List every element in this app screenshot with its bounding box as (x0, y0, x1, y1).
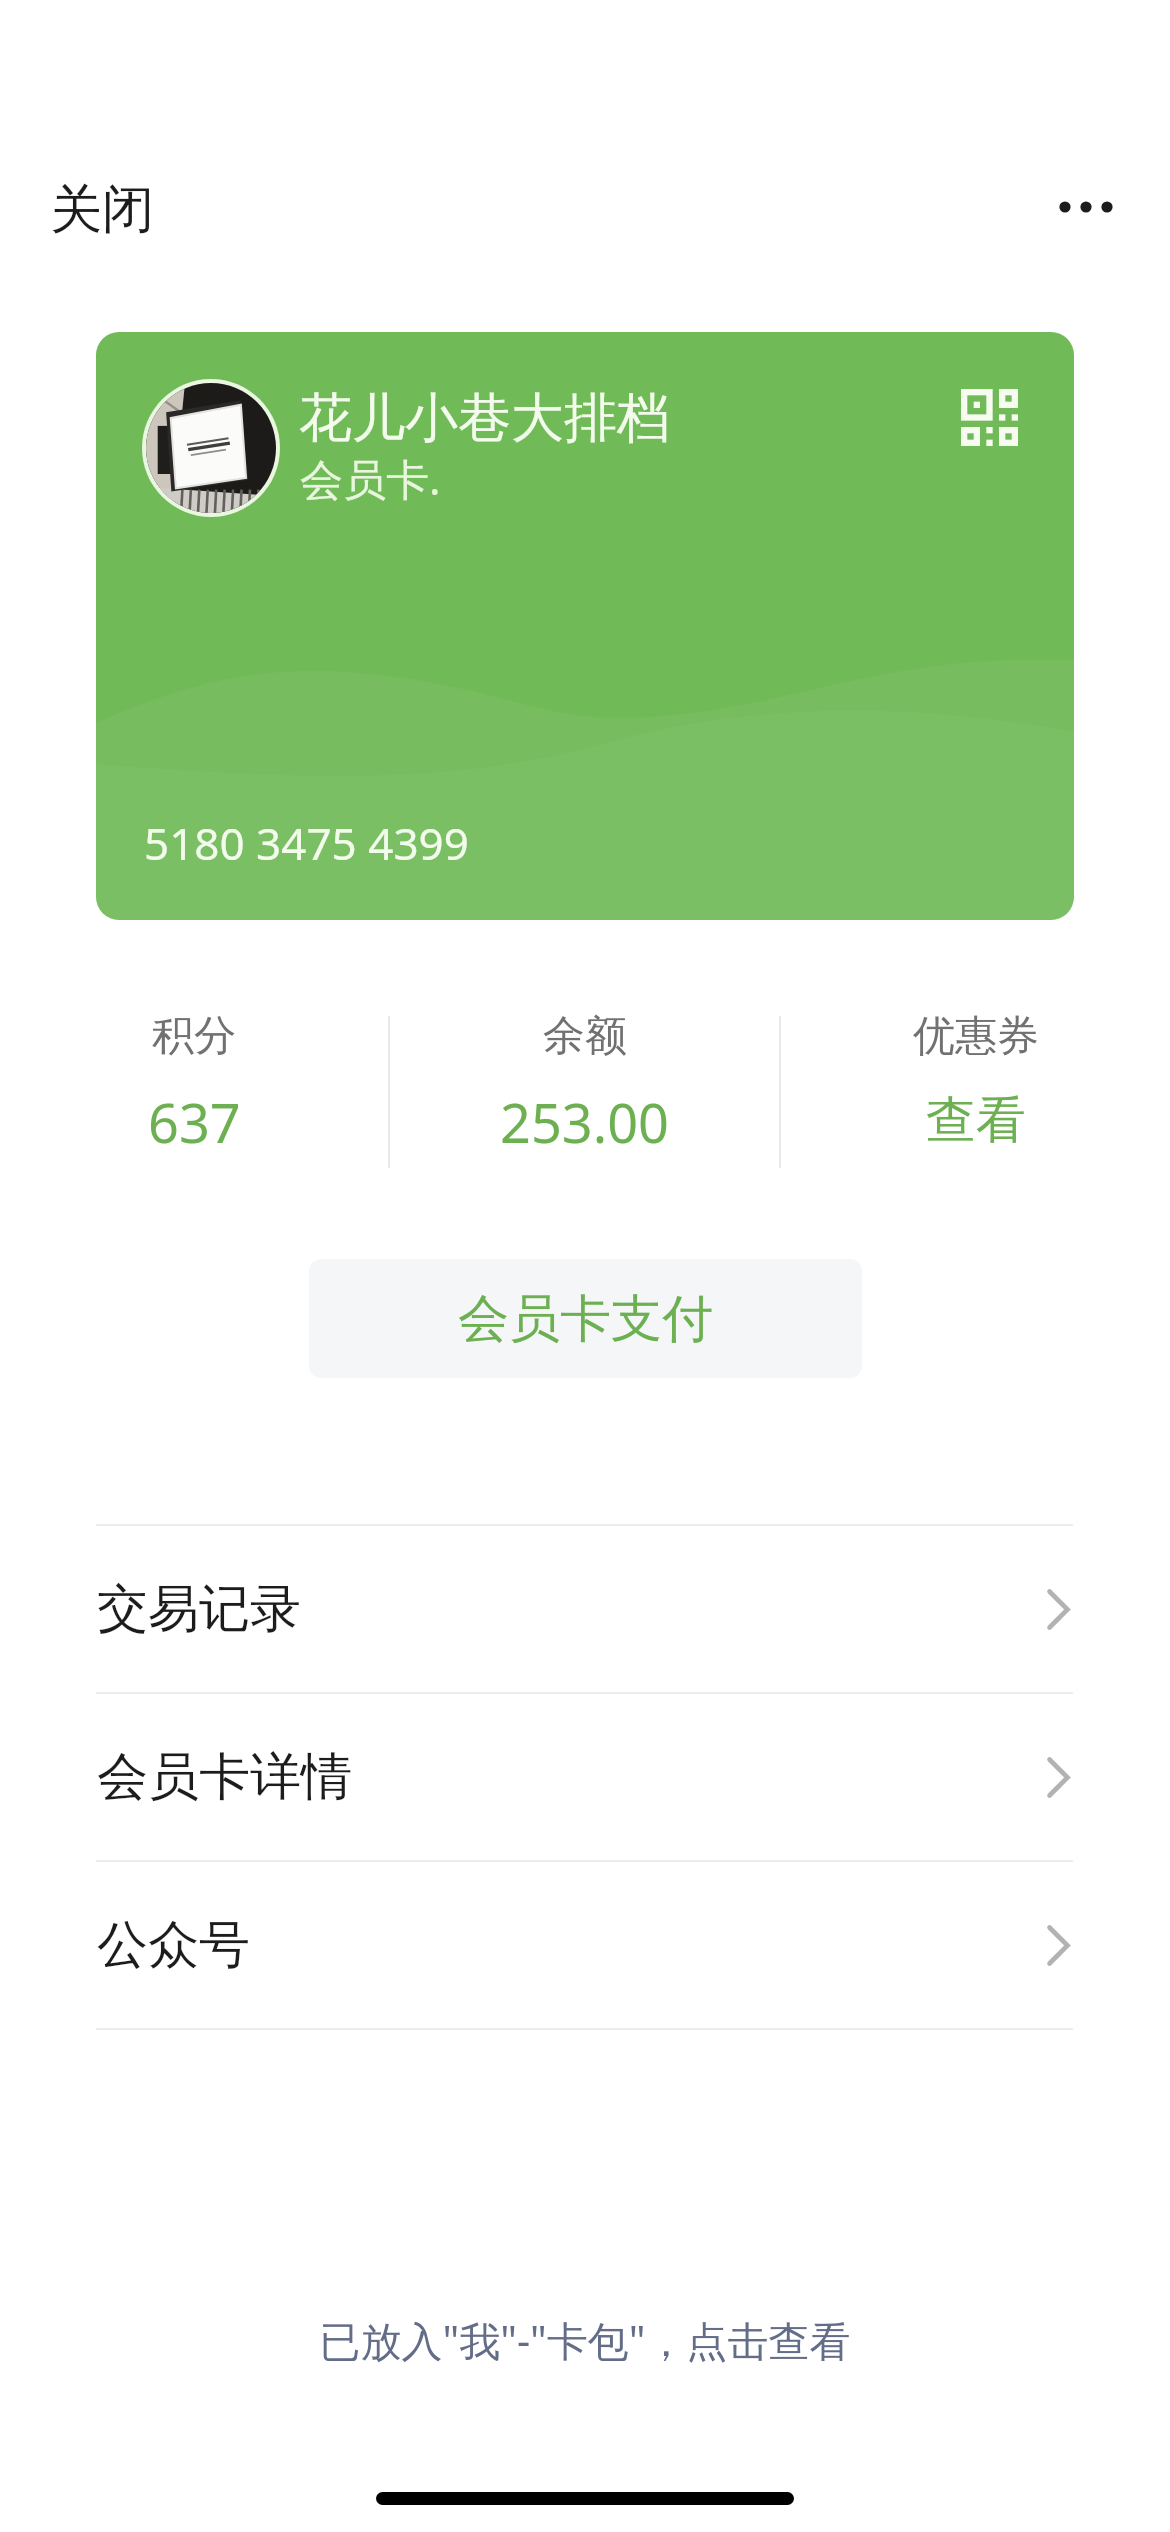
staticText: 交易记录 (97, 1577, 301, 1641)
staticText: 会员卡支付 (458, 1287, 713, 1351)
button[interactable]: 关闭 (20, 147, 176, 259)
staticText: 查看 (926, 1089, 1026, 1152)
button[interactable]: Show membership card QR code (955, 383, 1024, 452)
staticText: 优惠券 (913, 1010, 1039, 1063)
staticText: 余额 (543, 1010, 627, 1063)
staticText: 253.00 (500, 1085, 669, 1159)
staticText: 会员卡详情 (97, 1745, 352, 1809)
button[interactable]: 会员卡详情 (0, 1694, 1170, 1860)
staticText: 5180 3475 4399 (144, 813, 469, 873)
staticText: 637 (148, 1085, 241, 1159)
button[interactable]: 公众号 (0, 1862, 1170, 2028)
button[interactable]: 余额 (390, 1010, 779, 1159)
staticText: 已放入"我"-"卡包"，点击查看 (319, 2312, 851, 2368)
staticText: 关闭 (50, 177, 154, 243)
button[interactable]: 花儿小巷大排档 (96, 332, 1074, 920)
button[interactable]: 会员卡支付 (309, 1259, 862, 1378)
button[interactable]: 优惠券 (781, 1010, 1170, 1152)
button[interactable]: 交易记录 (0, 1526, 1170, 1692)
staticText: 公众号 (97, 1913, 250, 1977)
staticText: 积分 (152, 1010, 236, 1063)
staticText: 花儿小巷大排档 (299, 385, 670, 452)
button[interactable]: 已放入"我"-"卡包"，点击查看 (0, 2300, 1170, 2380)
button[interactable]: 积分 (0, 1010, 388, 1159)
staticText: 会员卡. (300, 449, 441, 508)
button[interactable]: More options (1046, 167, 1126, 247)
